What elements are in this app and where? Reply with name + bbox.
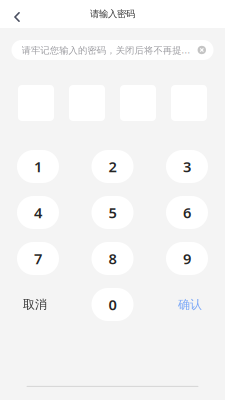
staticText: 3 [183,157,191,176]
staticText: 取消 [23,297,47,312]
button[interactable]: 6 [166,196,208,229]
staticText: 8 [108,249,116,268]
staticText: 1 [34,157,42,176]
staticText: 7 [34,249,42,268]
button[interactable]: 0 [91,288,133,321]
staticText: 确认 [178,297,202,312]
button[interactable]: Dismiss hint [198,46,206,54]
button[interactable]: 9 [166,242,208,275]
staticText: 2 [108,157,116,176]
button[interactable]: 确认 [166,288,208,321]
staticText: 5 [108,203,116,222]
staticText: 请输入密码 [90,8,135,20]
button[interactable]: 7 [17,242,59,275]
button[interactable]: 3 [166,150,208,183]
button[interactable]: Back [0,0,32,28]
button[interactable]: 取消 [17,288,59,321]
staticText: 6 [183,203,191,222]
button[interactable]: 1 [17,150,59,183]
staticText: 9 [183,249,191,268]
staticText: 请牢记您输入的密码，关闭后将不再提示 [21,44,190,56]
button[interactable]: 4 [17,196,59,229]
staticText: 4 [34,203,42,222]
button[interactable]: 8 [91,242,133,275]
button[interactable]: 5 [91,196,133,229]
staticText: 0 [108,295,116,314]
button[interactable]: 2 [91,150,133,183]
